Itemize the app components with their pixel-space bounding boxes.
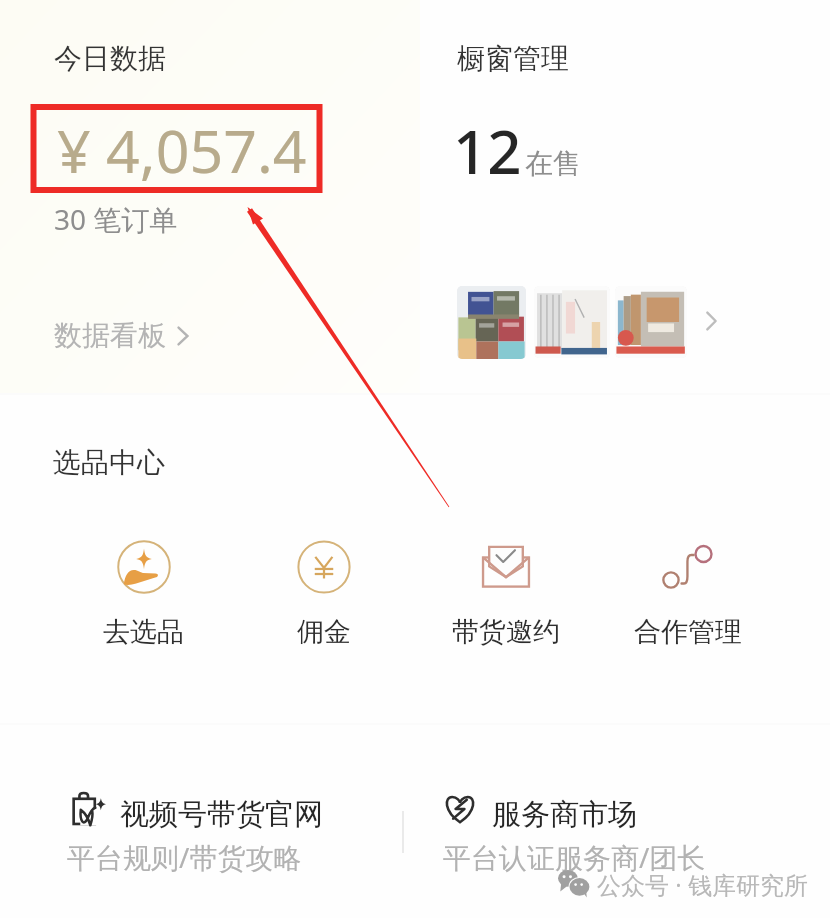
staticText: 30 笔订单 xyxy=(54,200,178,238)
button[interactable]: More products xyxy=(695,305,727,337)
button[interactable]: 服务商市场 xyxy=(436,784,766,872)
button[interactable]: 佣金 xyxy=(249,539,399,674)
staticText: 平台规则/带货攻略 xyxy=(67,838,302,876)
button[interactable]: 数据看板 xyxy=(54,318,190,353)
staticText: 服务商市场 xyxy=(492,796,637,833)
staticText: 12 xyxy=(453,110,522,192)
button[interactable]: 今日数据 xyxy=(0,0,420,393)
button[interactable]: Product 1 xyxy=(457,286,526,359)
staticText: 视频号带货官网 xyxy=(120,796,323,833)
button[interactable]: 去选品 xyxy=(68,539,218,674)
staticText: 今日数据 xyxy=(54,41,166,76)
button[interactable]: Product 3 xyxy=(615,286,687,358)
staticText: 橱窗管理 xyxy=(457,41,569,76)
button[interactable]: 视频号带货官网 xyxy=(60,784,390,872)
button[interactable]: Product 2 xyxy=(534,286,610,358)
button[interactable]: 带货邀约 xyxy=(431,539,581,674)
staticText: 选品中心 xyxy=(53,445,165,480)
staticText: 数据看板 xyxy=(54,318,166,353)
staticText: ¥ 4,057.4 xyxy=(57,110,307,190)
staticText: 平台认证服务商/团长 xyxy=(443,838,706,876)
staticText: 合作管理 xyxy=(634,615,742,649)
button[interactable]: 合作管理 xyxy=(613,539,763,674)
button[interactable]: 橱窗管理 xyxy=(420,0,830,393)
staticText: 去选品 xyxy=(103,615,184,649)
staticText: 带货邀约 xyxy=(452,615,560,649)
staticText: 在售 xyxy=(525,146,581,181)
staticText: 佣金 xyxy=(297,615,351,649)
staticText: 公众号 · 钱库研究所 xyxy=(597,868,808,901)
